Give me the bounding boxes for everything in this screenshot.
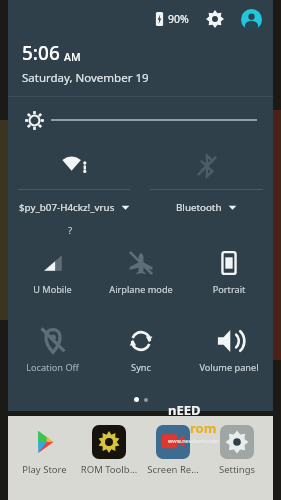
staticText: 5:06	[22, 40, 60, 66]
button[interactable]: Play Store	[12, 425, 77, 476]
button[interactable]: Bluetooth	[140, 190, 273, 224]
staticText: $py_b07-H4ckz!_vrus	[19, 201, 115, 214]
button[interactable]: U Mobile	[8, 244, 97, 296]
staticText: Volume panel	[185, 361, 273, 374]
staticText: nEED	[168, 401, 201, 419]
staticText: AM	[64, 50, 81, 64]
button[interactable]: Portrait	[185, 244, 273, 296]
staticText: Play Store	[12, 463, 77, 476]
button[interactable]: User profile	[239, 7, 263, 31]
button[interactable]: Location Off	[8, 322, 97, 374]
staticText: 90%	[168, 12, 189, 26]
button[interactable]: Airplane mode	[97, 244, 185, 296]
staticText: Portrait	[185, 283, 273, 296]
staticText: www.needrom.com	[168, 437, 219, 444]
staticText: Location Off	[8, 361, 97, 374]
button[interactable]: Screen Re…	[141, 425, 205, 476]
button[interactable]: Bluetooth	[140, 143, 273, 189]
button[interactable]: Wi-Fi	[8, 143, 140, 189]
staticText: U Mobile	[8, 283, 97, 296]
staticText: Saturday, November 19	[22, 70, 149, 86]
staticText: ROM Toolb…	[77, 463, 141, 476]
button[interactable]: Volume panel	[185, 322, 273, 374]
button[interactable]: Brightness	[45, 110, 257, 130]
staticText: Bluetooth	[176, 201, 222, 214]
button[interactable]: Settings	[203, 7, 227, 31]
staticText: ?	[68, 224, 73, 237]
button[interactable]: Settings	[205, 425, 269, 476]
staticText: Airplane mode	[97, 283, 185, 296]
button[interactable]: $py_b07-H4ckz!_vrus	[8, 190, 140, 224]
staticText: Settings	[205, 463, 269, 476]
staticText: rom	[190, 419, 217, 437]
button[interactable]: Sync	[97, 322, 185, 374]
staticText: Screen Re…	[141, 463, 205, 476]
button[interactable]: ROM Toolb…	[77, 425, 141, 476]
staticText: Sync	[97, 361, 185, 374]
